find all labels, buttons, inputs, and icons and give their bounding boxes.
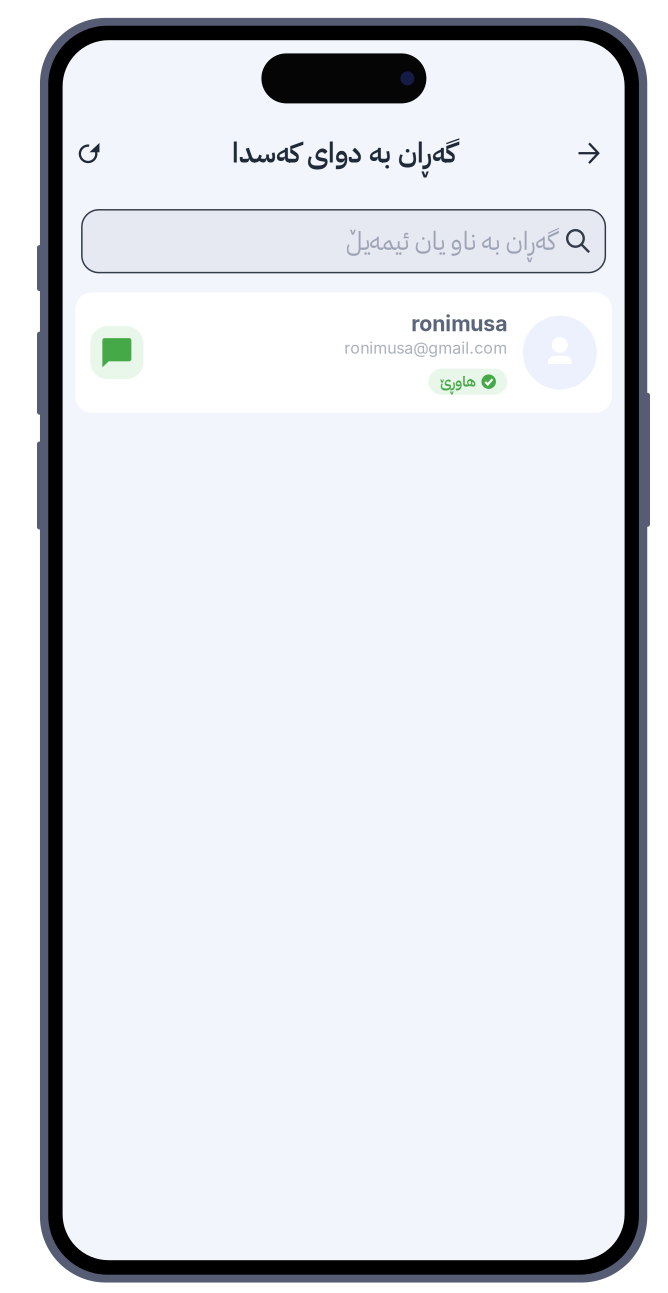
button[interactable]: ronimusa [75, 292, 612, 413]
button[interactable]: Refresh [66, 130, 112, 176]
staticText: ronimusa@gmail.com [344, 338, 507, 358]
staticText: هاوڕێ [440, 371, 476, 393]
staticText: گەڕان بە دوای کەسدا [232, 132, 456, 174]
button[interactable]: گەڕان بە ناو یان ئیمەیڵ [82, 210, 605, 273]
staticText: ronimusa [411, 310, 507, 336]
staticText: گەڕان بە ناو یان ئیمەیڵ [345, 222, 555, 260]
button[interactable]: Back [566, 130, 612, 176]
